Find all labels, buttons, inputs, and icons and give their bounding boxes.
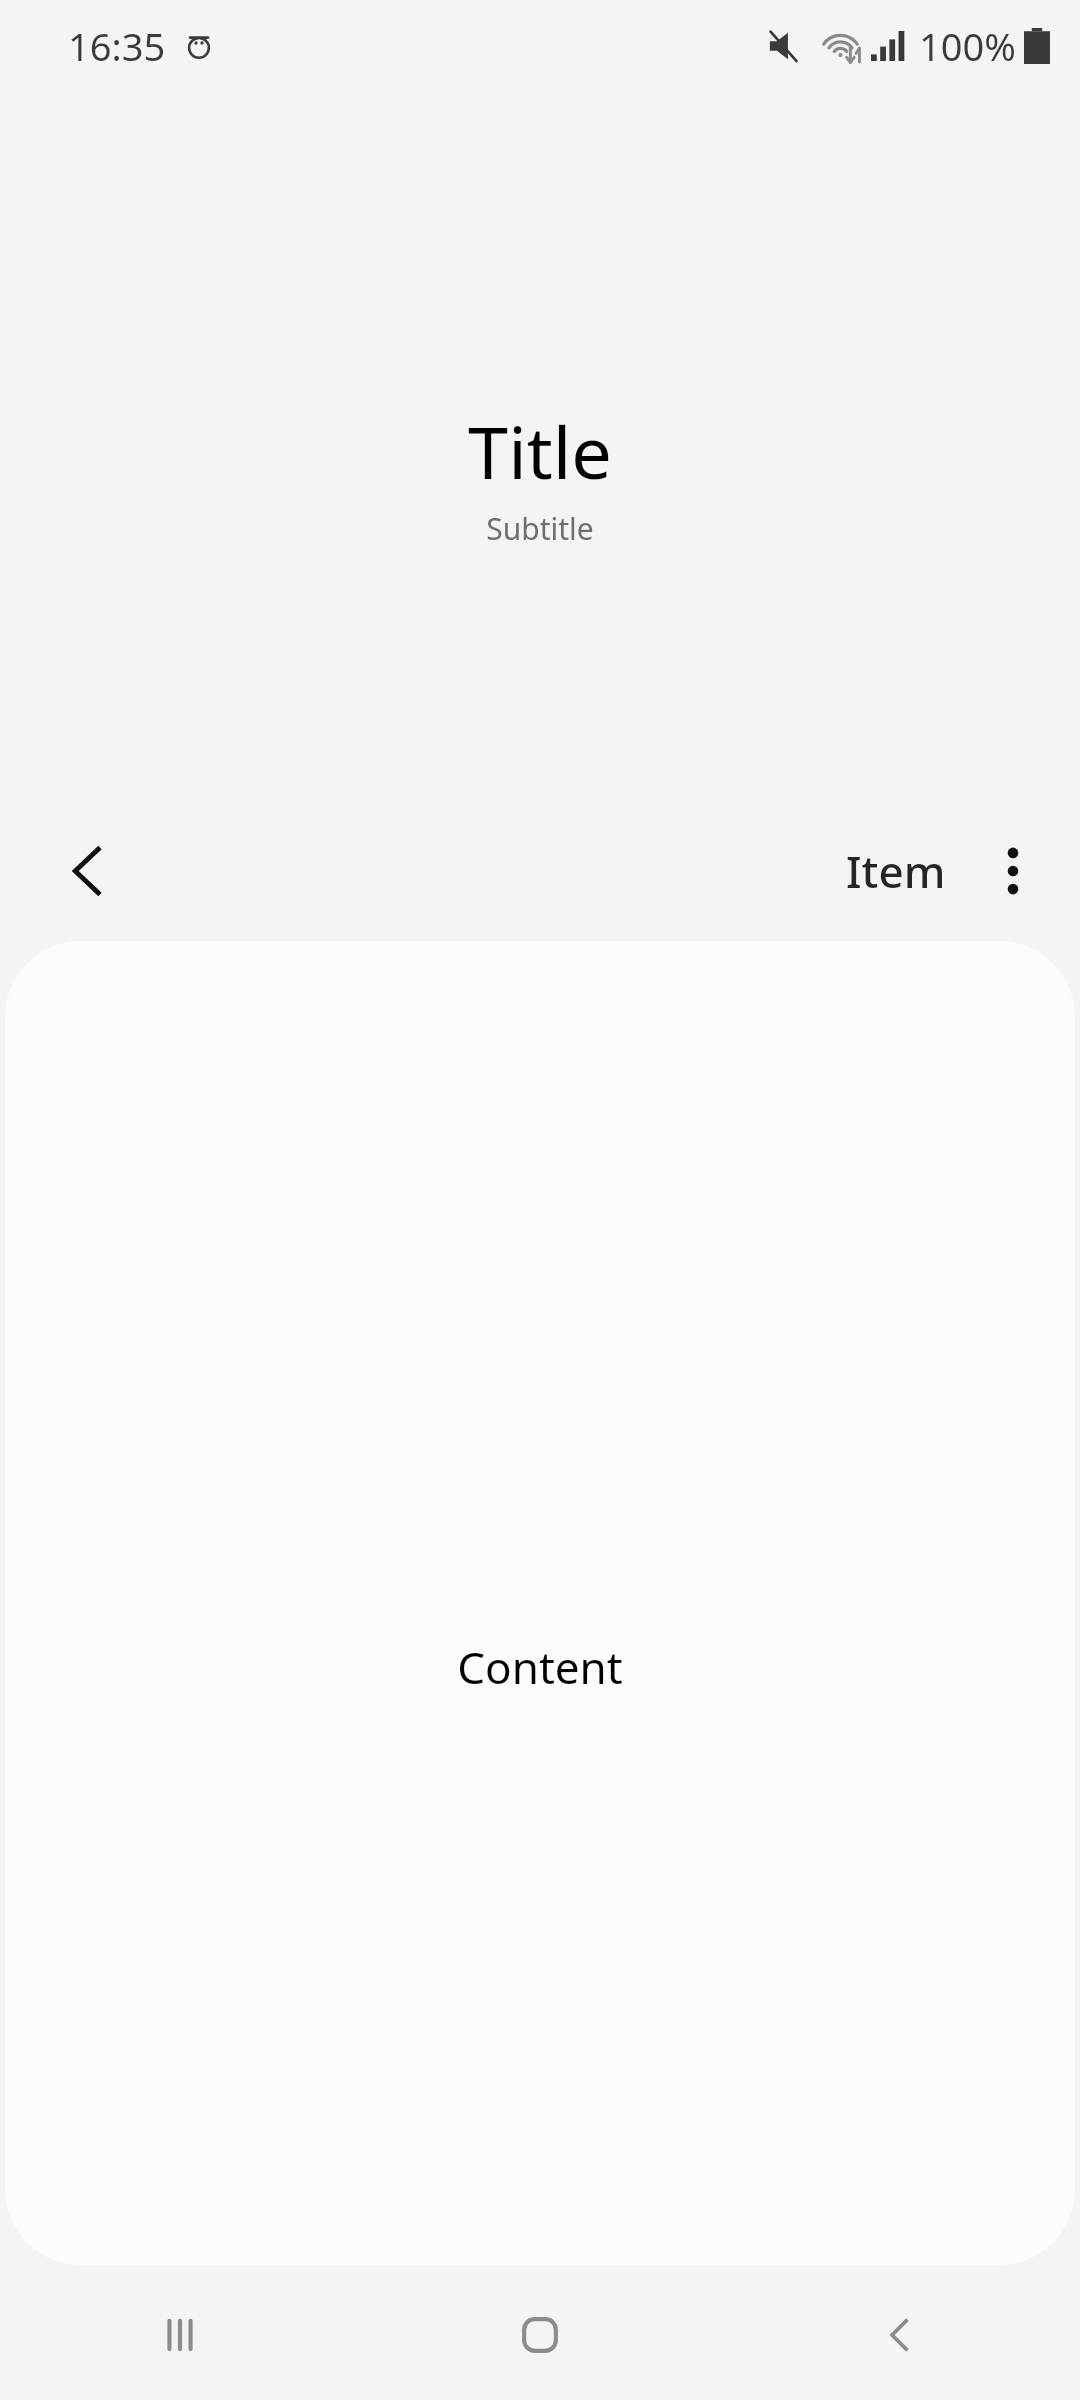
- staticText: 16:35: [68, 20, 166, 72]
- button[interactable]: Home: [360, 2270, 720, 2400]
- button[interactable]: More options: [958, 816, 1068, 926]
- staticText: 100%: [919, 20, 1016, 72]
- button[interactable]: Back: [720, 2270, 1080, 2400]
- button[interactable]: Back: [22, 805, 154, 937]
- button[interactable]: Item: [834, 831, 958, 911]
- staticText: Title: [468, 402, 612, 500]
- button[interactable]: Recent apps: [0, 2270, 360, 2400]
- button[interactable]: Content: [5, 941, 1075, 2265]
- staticText: Item: [846, 841, 946, 901]
- staticText: Content: [457, 1637, 623, 1697]
- staticText: Subtitle: [486, 508, 594, 549]
